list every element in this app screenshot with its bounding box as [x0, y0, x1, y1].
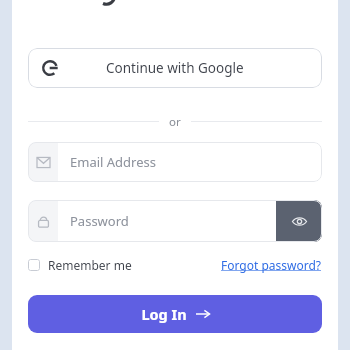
- button[interactable]: Show password: [276, 200, 322, 242]
- button[interactable]: Log In: [28, 295, 322, 333]
- staticText: Log In: [141, 304, 187, 324]
- button[interactable]: Forgot password?: [221, 257, 322, 273]
- button[interactable]: Email Address: [28, 142, 322, 182]
- staticText: Password: [70, 212, 276, 230]
- button[interactable]: Continue with Google: [28, 48, 322, 88]
- staticText: or: [169, 114, 181, 128]
- button[interactable]: Remember me: [28, 257, 132, 273]
- staticText: Forgot password?: [221, 257, 322, 273]
- staticText: Email Address: [70, 153, 156, 171]
- staticText: Remember me: [48, 257, 132, 273]
- staticText: Continue with Google: [106, 59, 244, 77]
